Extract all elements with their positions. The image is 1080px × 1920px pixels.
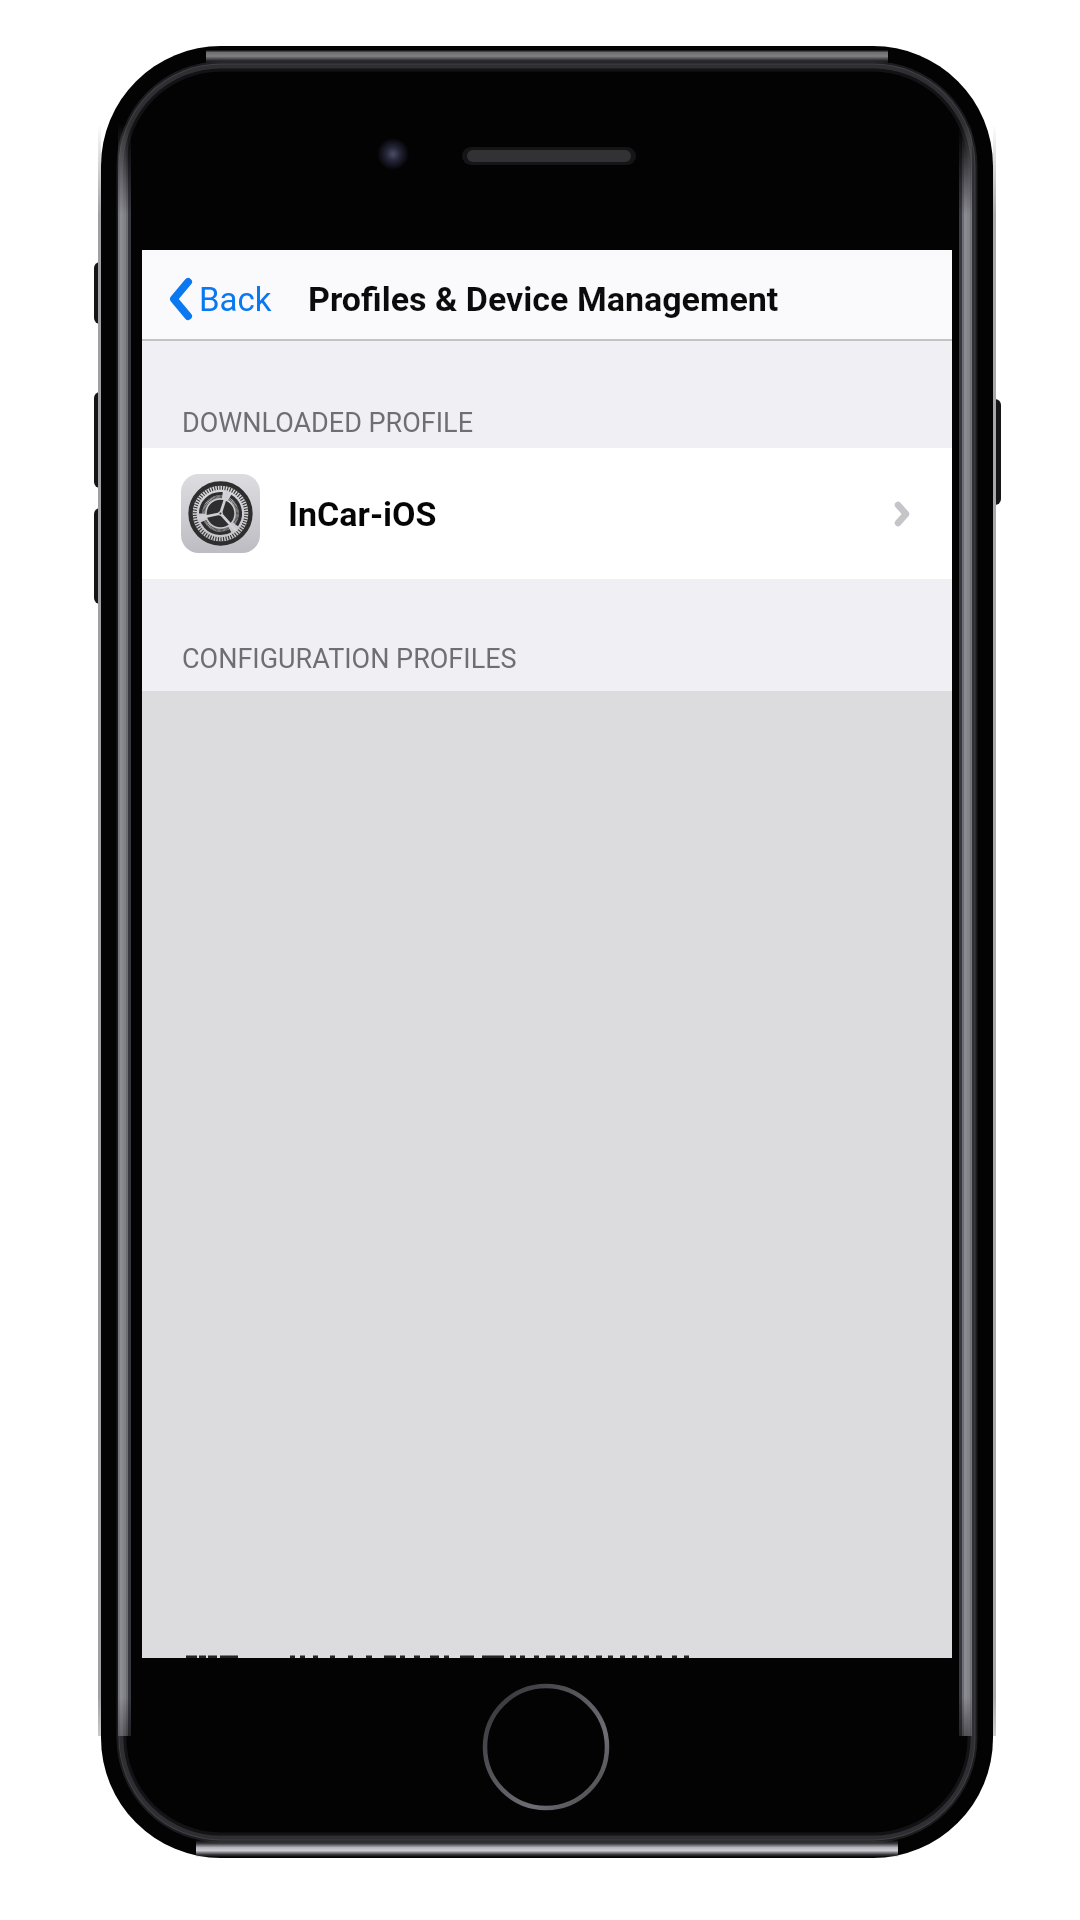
- button[interactable]: InCar-iOS: [142, 448, 952, 579]
- staticText: InCar-iOS: [288, 494, 437, 534]
- staticText: DOWNLOADED PROFILE: [182, 407, 473, 439]
- button[interactable]: Back: [142, 257, 282, 341]
- staticText: Back: [199, 280, 272, 319]
- staticText: Profiles & Device Management: [308, 279, 779, 319]
- staticText: CONFIGURATION PROFILES: [182, 643, 517, 675]
- other: Open InCar-iOS profile: [895, 502, 909, 526]
